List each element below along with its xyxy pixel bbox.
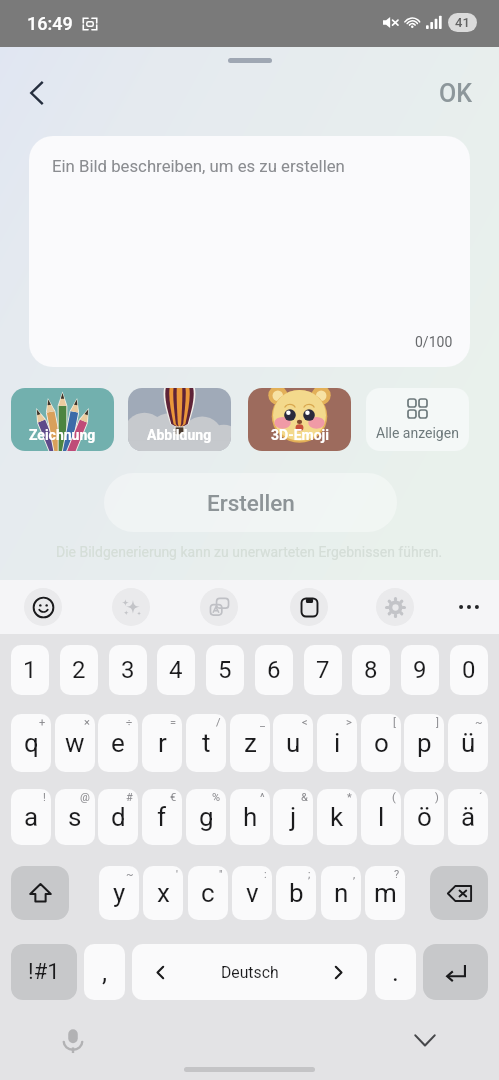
staticText: >	[346, 716, 352, 729]
button[interactable]: 6	[255, 645, 293, 695]
staticText: Alle anzeigen	[376, 425, 459, 441]
staticText: x	[157, 878, 170, 908]
button[interactable]: .	[375, 944, 416, 1000]
staticText: Abbildung	[147, 427, 212, 443]
button[interactable]: t	[186, 714, 226, 772]
button[interactable]: c	[188, 866, 228, 920]
staticText: 5	[218, 656, 232, 684]
button[interactable]: Zeichnung	[11, 388, 114, 451]
button[interactable]: 1	[11, 645, 49, 695]
staticText: 0	[462, 656, 476, 684]
staticText: =	[170, 716, 177, 729]
staticText: i	[334, 728, 341, 758]
button[interactable]: g	[186, 789, 226, 845]
button[interactable]: ä	[448, 789, 488, 845]
staticText: v	[246, 878, 259, 908]
button[interactable]: Clipboard	[290, 588, 328, 626]
button[interactable]: o	[361, 714, 401, 772]
button[interactable]: Translate	[200, 588, 238, 626]
button[interactable]: Ein Bild beschreiben, um es zu erstellen	[29, 136, 470, 367]
button[interactable]: h	[230, 789, 270, 845]
button[interactable]: d	[98, 789, 138, 845]
staticText: ÷	[126, 716, 133, 729]
staticText: u	[286, 728, 301, 758]
button[interactable]: ,	[84, 944, 125, 1000]
staticText: @	[80, 791, 90, 804]
button[interactable]: k	[317, 789, 357, 845]
staticText: ö	[417, 802, 432, 832]
button[interactable]: v	[232, 866, 272, 920]
button[interactable]: 9	[401, 645, 439, 695]
button[interactable]: f	[142, 789, 182, 845]
button[interactable]: Backspace	[430, 866, 488, 920]
staticText: y	[113, 878, 126, 908]
staticText: s	[68, 802, 82, 832]
button[interactable]: More options	[450, 580, 488, 634]
button[interactable]: p	[404, 714, 444, 772]
button[interactable]: r	[142, 714, 182, 772]
button[interactable]: n	[321, 866, 361, 920]
button[interactable]: b	[276, 866, 316, 920]
button[interactable]: Enter	[423, 944, 488, 1000]
button[interactable]: 8	[352, 645, 390, 695]
staticText: &	[301, 791, 308, 804]
button[interactable]: Back	[15, 71, 59, 115]
button[interactable]: 4	[157, 645, 195, 695]
staticText: n	[334, 878, 349, 908]
staticText: 0/100	[415, 334, 453, 350]
button[interactable]: 7	[304, 645, 342, 695]
staticText: r	[158, 728, 167, 758]
button[interactable]: q	[11, 714, 51, 772]
staticText: €	[170, 791, 177, 804]
button[interactable]: OK	[428, 71, 484, 115]
button[interactable]: Hide keyboard	[404, 1017, 446, 1059]
button[interactable]: m	[365, 866, 405, 920]
button[interactable]: 0	[450, 645, 488, 695]
button[interactable]: ü	[448, 714, 488, 772]
button[interactable]: Settings	[376, 588, 414, 626]
button[interactable]: Voice input	[52, 1020, 94, 1062]
staticText: '	[176, 868, 178, 881]
button[interactable]: x	[143, 866, 183, 920]
button[interactable]: 5	[206, 645, 244, 695]
staticText: 1	[23, 656, 37, 684]
staticText: (	[392, 791, 396, 804]
staticText: [	[393, 716, 396, 729]
staticText: /	[216, 716, 221, 729]
button[interactable]: ö	[404, 789, 444, 845]
button[interactable]: Emoji	[24, 588, 62, 626]
staticText: m	[374, 878, 397, 908]
button[interactable]: w	[55, 714, 95, 772]
button[interactable]: l	[361, 789, 401, 845]
button[interactable]: j	[273, 789, 313, 845]
staticText: ,	[102, 957, 108, 987]
staticText: "	[219, 868, 223, 881]
button[interactable]: 2	[60, 645, 98, 695]
staticText: Erstellen	[207, 490, 295, 516]
button[interactable]: s	[55, 789, 95, 845]
staticText: w	[65, 728, 85, 758]
button[interactable]: e	[98, 714, 138, 772]
button[interactable]: 3D-Emoji	[248, 388, 351, 451]
button[interactable]: y	[99, 866, 139, 920]
button[interactable]: Erstellen	[104, 473, 397, 532]
staticText: g	[199, 802, 214, 832]
button[interactable]: AI suggestions	[112, 588, 150, 626]
button[interactable]: i	[317, 714, 357, 772]
button[interactable]: shift	[11, 866, 69, 920]
staticText: ?	[394, 868, 400, 881]
button[interactable]: Alle anzeigen	[366, 388, 469, 451]
button[interactable]: Abbildung	[128, 388, 231, 451]
staticText: q	[24, 728, 39, 758]
button[interactable]: u	[273, 714, 313, 772]
staticText: ]	[436, 716, 439, 729]
button[interactable]: z	[230, 714, 270, 772]
button[interactable]: a	[11, 789, 51, 845]
staticText: Zeichnung	[29, 427, 96, 443]
staticText: o	[374, 728, 389, 758]
staticText: p	[417, 728, 432, 758]
button[interactable]: Deutsch	[132, 944, 367, 1000]
staticText: _	[260, 716, 265, 729]
button[interactable]: 3	[109, 645, 147, 695]
button[interactable]: !#1	[11, 944, 77, 1000]
